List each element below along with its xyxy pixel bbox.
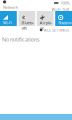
button[interactable]: Network <box>0 0 18 10</box>
staticText: Wi-Fi <box>3 20 12 25</box>
button[interactable]: Airplane <box>37 11 54 26</box>
button[interactable]: Wi-Fi <box>0 11 17 26</box>
staticText: Rotation <box>58 20 71 25</box>
button[interactable]: ALL SETTINGS <box>40 27 72 33</box>
button[interactable]: Bluetooth <box>18 11 35 26</box>
staticText: 9:41 <box>62 7 69 12</box>
staticText: Wi-Fi <box>51 7 60 12</box>
staticText: ALL SETTINGS <box>44 27 69 33</box>
staticText: Airplane <box>40 20 52 31</box>
staticText: Network <box>3 4 18 10</box>
staticText: Bluetooth <box>21 20 33 31</box>
button[interactable]: Rotation <box>55 11 72 26</box>
staticText: No notifications <box>2 36 40 43</box>
staticText: 100% <box>60 0 69 6</box>
